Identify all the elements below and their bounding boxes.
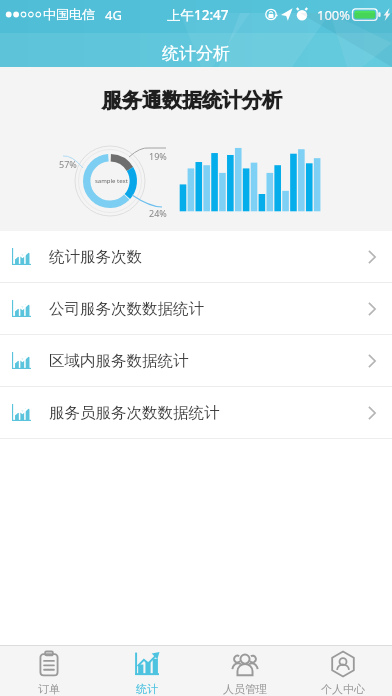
staticText: 24% xyxy=(149,207,167,219)
staticText: 中国电信 xyxy=(43,6,95,22)
staticText: 57% xyxy=(59,158,77,170)
staticText: 服务通数据统计分析 xyxy=(102,88,282,113)
staticText: 公司服务次数数据统计 xyxy=(49,299,204,319)
staticText: 100% xyxy=(317,6,351,24)
staticText: 统计 xyxy=(136,682,158,696)
button[interactable]: 统计服务次数 xyxy=(0,231,392,282)
button[interactable]: 区域内服务数据统计 xyxy=(0,335,392,386)
staticText: 人员管理 xyxy=(223,682,267,696)
button[interactable]: 统计 xyxy=(98,646,196,696)
staticText: 服务员服务次数数据统计 xyxy=(49,403,220,423)
button[interactable]: 订单 xyxy=(0,646,98,696)
staticText: 订单 xyxy=(38,682,60,696)
staticText: 上午12:47 xyxy=(167,6,229,24)
button[interactable]: 人员管理 xyxy=(196,646,294,696)
button[interactable]: 个人中心 xyxy=(294,646,392,696)
staticText: 个人中心 xyxy=(321,682,365,696)
staticText: 19% xyxy=(149,150,167,162)
button[interactable]: 服务员服务次数数据统计 xyxy=(0,387,392,438)
staticText: 统计分析 xyxy=(162,43,230,64)
staticText: 统计服务次数 xyxy=(49,247,142,267)
button[interactable]: 公司服务次数数据统计 xyxy=(0,283,392,334)
staticText: 4G xyxy=(105,6,122,24)
staticText: 区域内服务数据统计 xyxy=(49,351,189,371)
staticText: sample text xyxy=(95,177,128,185)
